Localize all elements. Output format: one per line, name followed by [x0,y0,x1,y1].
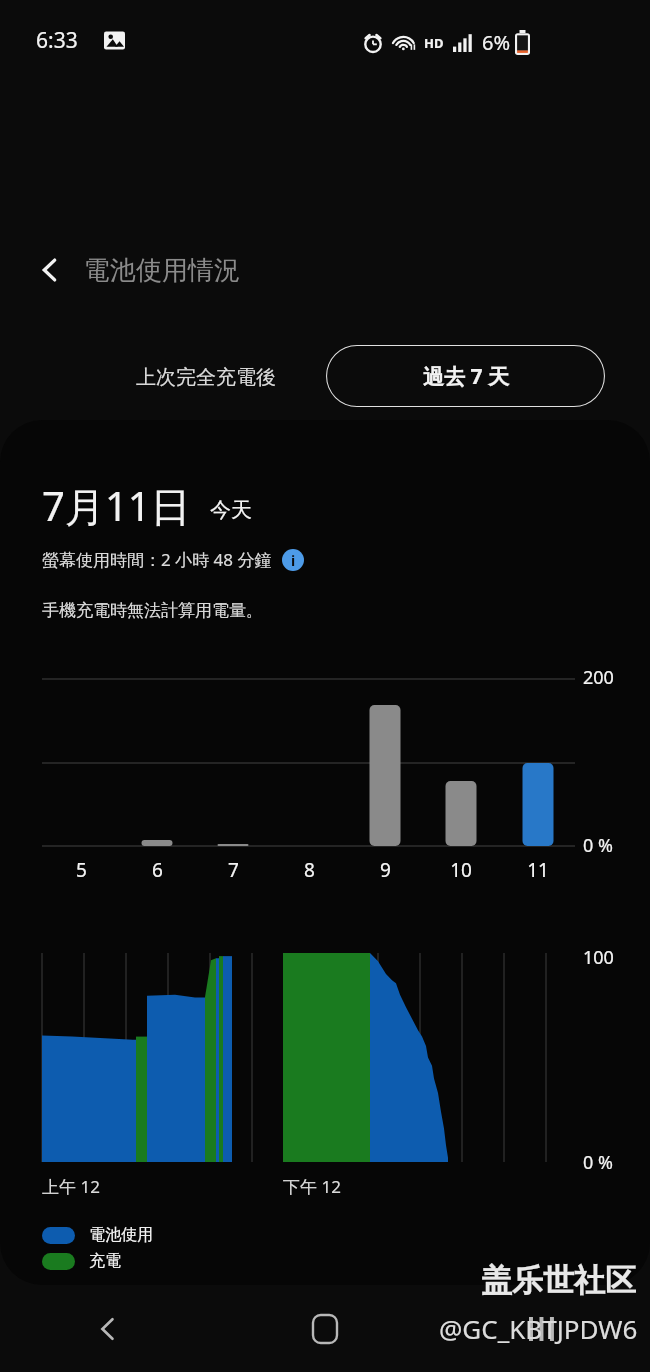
staticText: 電池使用 [89,1225,153,1245]
staticText: HD [424,34,444,52]
staticText: 6:33 [36,26,78,55]
staticText: 200 [583,665,614,690]
button[interactable]: Recents [433,1286,650,1372]
staticText: 6 [152,857,163,883]
staticText: i [291,551,296,570]
staticText: 上次完全充電後 [136,365,276,390]
staticText: 電池使用情況 [84,254,240,287]
staticText: @GC_KBTJPDW6 [439,1311,638,1346]
staticText: 10 [450,857,472,883]
staticText: 11 [527,857,549,883]
staticText: 螢幕使用時間：2 小時 48 分鐘 [42,548,272,571]
staticText: 9 [380,857,391,883]
button[interactable]: 過去 7 天 [326,345,605,407]
button[interactable]: Back [22,242,78,298]
staticText: 0 % [583,833,613,858]
staticText: 上午 12 [42,1175,100,1198]
staticText: 盖乐世社区 [481,1261,636,1300]
button[interactable]: Info [282,549,304,571]
staticText: 6% [482,29,511,56]
staticText: 今天 [210,497,252,523]
staticText: 8 [304,857,315,883]
staticText: 充電 [89,1251,121,1271]
button[interactable]: Home [216,1286,433,1372]
staticText: 下午 12 [283,1175,341,1198]
button[interactable]: 上次完全充電後 [96,345,316,409]
staticText: 7 [228,857,239,883]
staticText: 5 [76,857,87,883]
staticText: 手機充電時無法計算用電量。 [42,600,263,621]
staticText: 0 % [583,1150,613,1175]
staticText: 7月11日 [42,478,191,533]
staticText: 過去 7 天 [423,362,509,391]
button[interactable]: Back [0,1286,216,1372]
staticText: 100 [583,945,614,970]
